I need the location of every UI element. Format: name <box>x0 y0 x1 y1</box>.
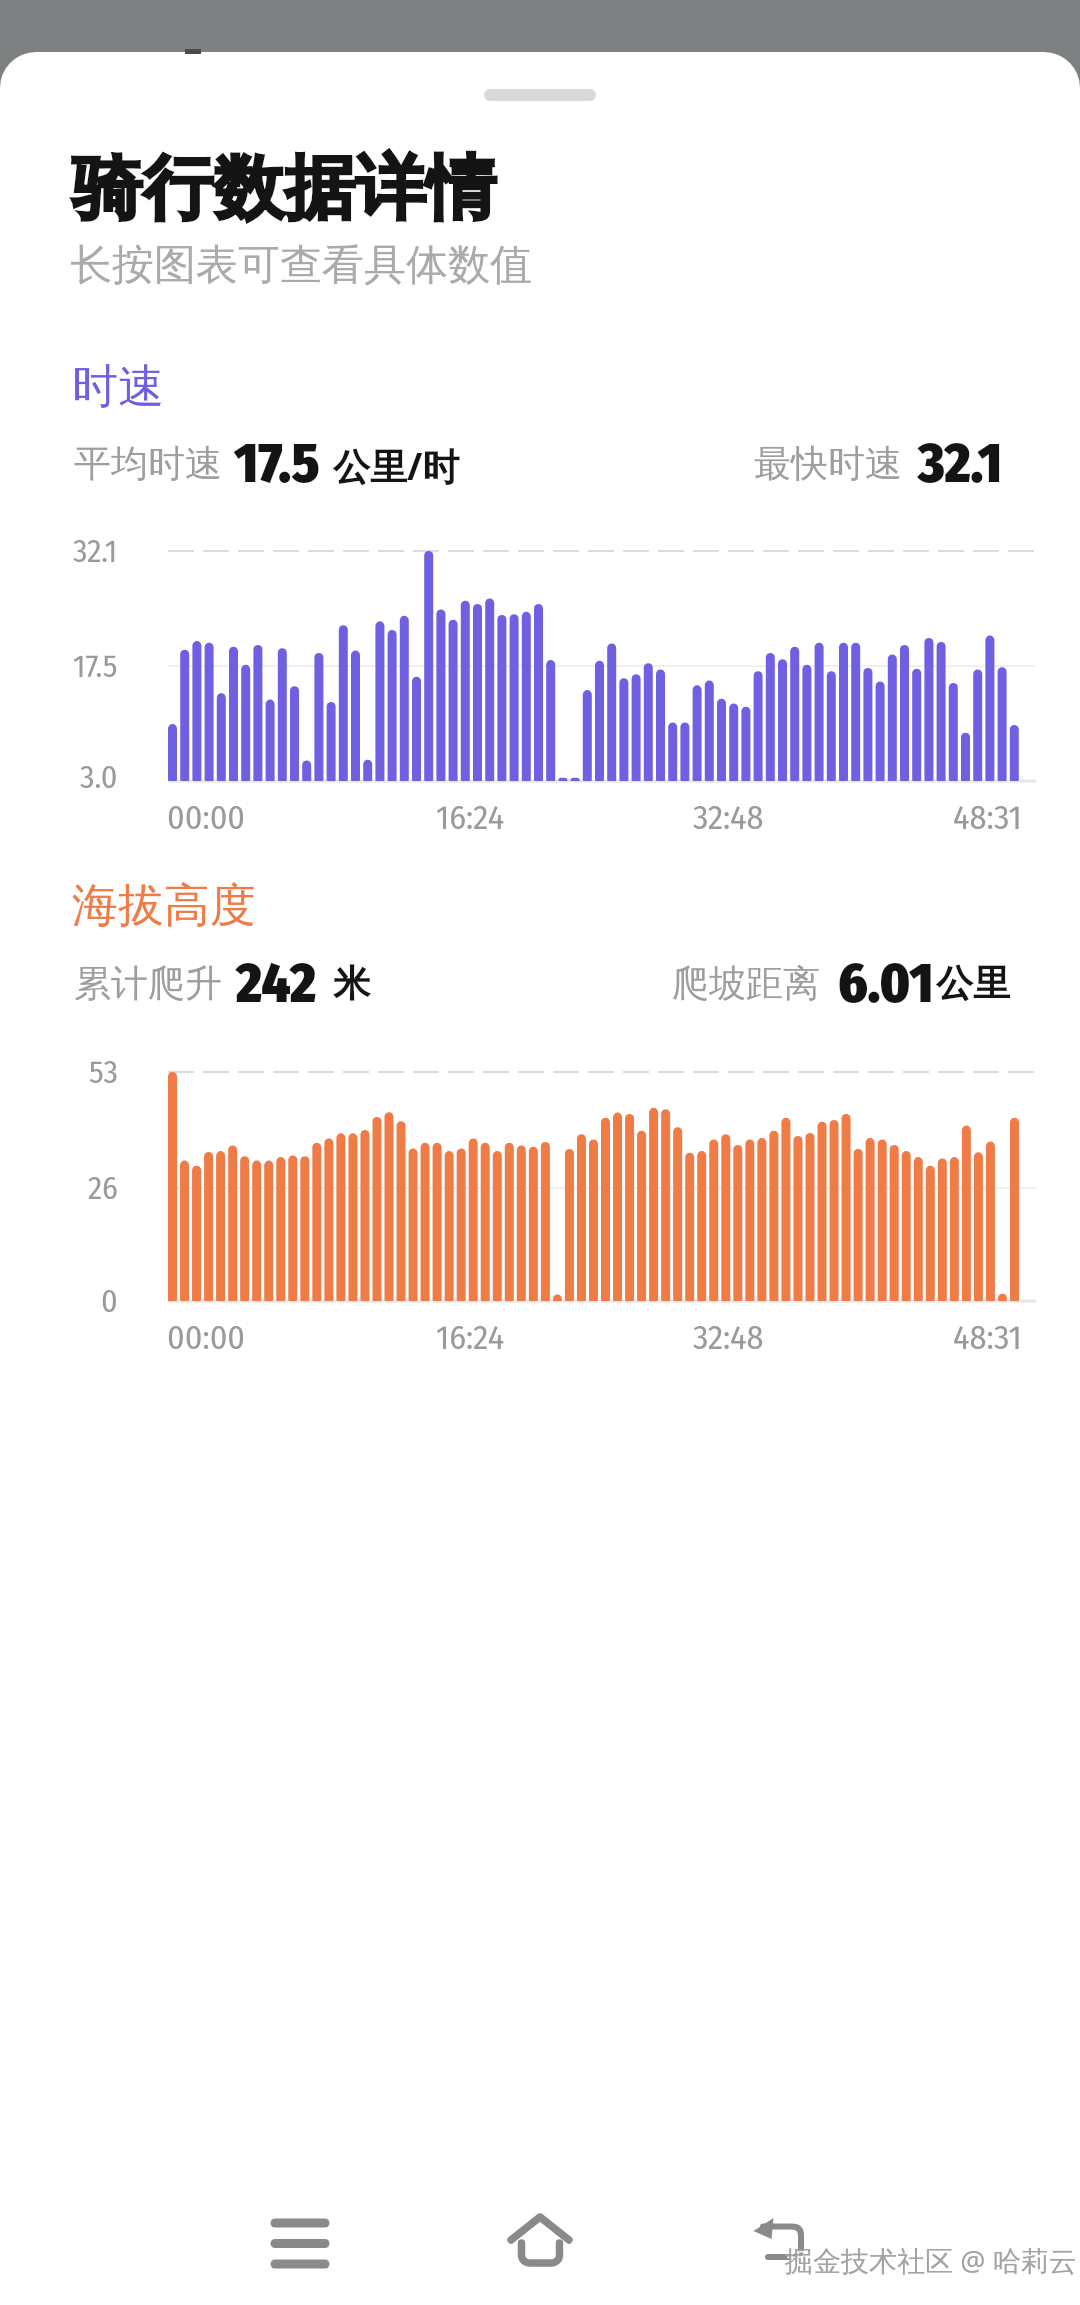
staticText: 16:24 <box>436 797 505 838</box>
staticText: 6.01 <box>838 951 934 1017</box>
staticText: 掘金技术社区 @ 哈莉云 <box>787 2243 1079 2281</box>
staticText: 米 <box>333 960 370 1007</box>
staticText: 长按图表可查看具体数值 <box>70 239 532 292</box>
staticText: 公里 <box>936 960 1010 1007</box>
staticText: 平均时速 <box>74 440 222 487</box>
staticText: 48:31 <box>953 797 1022 838</box>
staticText: 00:00 <box>167 1317 246 1358</box>
staticText: 48:31 <box>953 1317 1022 1358</box>
staticText: 累计爬升 <box>74 960 222 1007</box>
staticText: 242 <box>236 951 317 1017</box>
staticText: 32.1 <box>73 532 118 570</box>
staticText: 32:48 <box>693 1317 764 1358</box>
button[interactable] <box>490 2194 590 2294</box>
staticText: 32:48 <box>693 797 764 838</box>
button[interactable] <box>250 2194 350 2294</box>
staticText: 16:24 <box>436 1317 505 1358</box>
staticText: 00:00 <box>167 797 246 838</box>
staticText: 0 <box>101 1282 118 1320</box>
staticText: 掘金技术社区 @ 哈莉云 <box>785 2241 1077 2279</box>
staticText: 爬坡距离 <box>672 960 820 1007</box>
staticText: 海拔高度 <box>72 877 256 935</box>
staticText: 53 <box>89 1053 118 1091</box>
staticText: 32.1 <box>918 431 1003 497</box>
staticText: 公里/时 <box>333 440 460 491</box>
staticText: 时速 <box>72 358 164 416</box>
staticText: 17.5 <box>234 431 320 497</box>
button[interactable] <box>730 2194 830 2294</box>
staticText: 3.0 <box>80 758 118 796</box>
staticText: 26 <box>88 1169 118 1207</box>
staticText: 最快时速 <box>754 440 902 487</box>
staticText: 骑行数据详情 <box>72 145 497 233</box>
staticText: 17.5 <box>73 647 118 685</box>
